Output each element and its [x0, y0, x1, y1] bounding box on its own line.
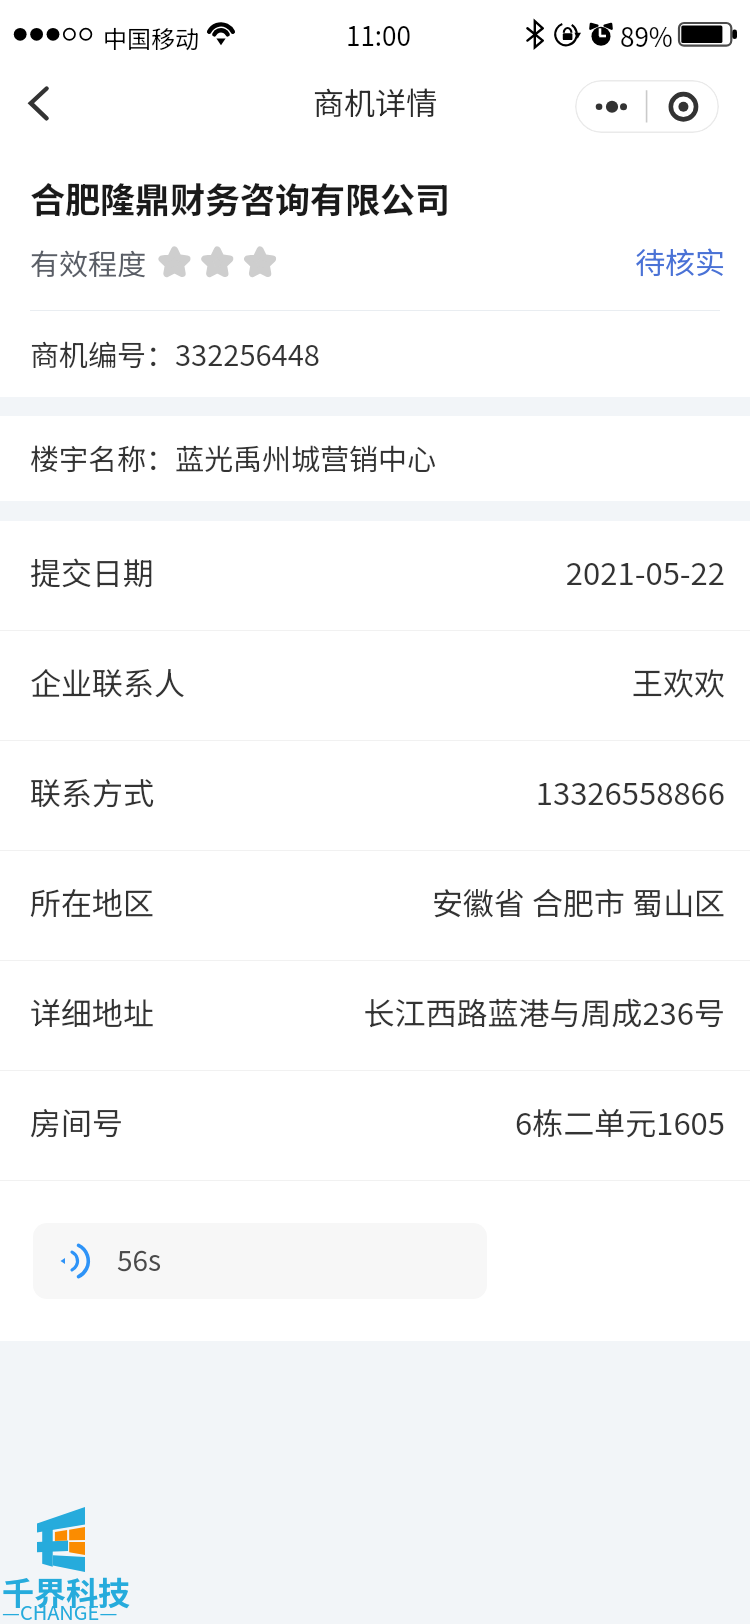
button[interactable]: 企业联系人 [0, 631, 750, 741]
staticText: 企业联系人 [30, 659, 185, 704]
staticText: 长江西路蓝港与周成236号 [363, 989, 725, 1034]
staticText: 详细地址 [30, 989, 154, 1034]
staticText: 13326558866 [535, 769, 725, 814]
button[interactable]: Play voice message, 56 seconds [33, 1223, 487, 1299]
staticText: 联系方式 [30, 769, 154, 814]
button[interactable]: 待核实 [635, 239, 725, 282]
staticText: 所在地区 [30, 879, 154, 924]
button[interactable]: 联系方式 [0, 741, 750, 851]
staticText: 提交日期 [30, 549, 154, 594]
staticText: 2021-05-22 [565, 549, 725, 594]
staticText: 合肥隆鼎财务咨询有限公司 [30, 172, 451, 223]
staticText: 房间号 [30, 1099, 123, 1144]
staticText: 楼宇名称：蓝光禹州城营销中心 [30, 436, 437, 478]
button[interactable]: 所在地区 [0, 851, 750, 961]
staticText: 待核实 [635, 239, 725, 282]
staticText: 89% [620, 17, 673, 55]
button[interactable]: 房间号 [0, 1071, 750, 1181]
staticText: —CHANGE— [2, 1597, 118, 1624]
button[interactable]: Menu and close [575, 80, 719, 133]
staticText: 商机编号：332256448 [30, 332, 320, 374]
button[interactable]: 详细地址 [0, 961, 750, 1071]
staticText: 安徽省 合肥市 蜀山区 [432, 879, 725, 924]
staticText: 11:00 [346, 16, 411, 54]
staticText: 有效程度 [30, 241, 147, 283]
staticText: 中国移动 [103, 20, 199, 55]
button[interactable]: Back [0, 62, 78, 150]
button[interactable]: 楼宇名称：蓝光禹州城营销中心 [0, 416, 750, 501]
button[interactable]: 提交日期 [0, 521, 750, 631]
staticText: 千界科技 [2, 1568, 130, 1614]
staticText: 商机详情 [313, 79, 437, 124]
staticText: 6栋二单元1605 [514, 1099, 725, 1144]
staticText: 王欢欢 [632, 659, 725, 704]
staticText: 56s [117, 1239, 162, 1280]
